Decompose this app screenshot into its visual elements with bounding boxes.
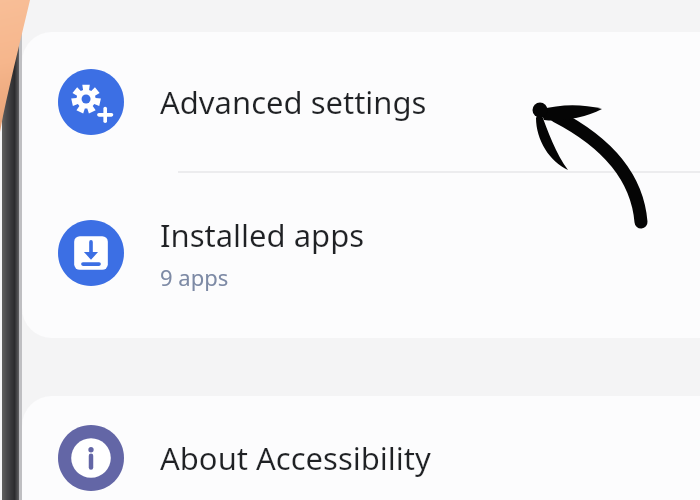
staticText: About Accessibility xyxy=(160,437,431,479)
other: Advanced settings icon xyxy=(58,69,124,135)
staticText: Advanced settings xyxy=(160,81,427,123)
button[interactable]: Installed apps icon xyxy=(22,173,700,333)
other: Installed apps icon xyxy=(58,220,124,286)
button[interactable]: Advanced settings icon xyxy=(22,32,700,171)
other: About Accessibility icon xyxy=(58,425,124,491)
staticText: Installed apps xyxy=(160,214,365,256)
staticText: 9 apps xyxy=(160,262,229,292)
button[interactable]: About Accessibility icon xyxy=(22,416,700,500)
